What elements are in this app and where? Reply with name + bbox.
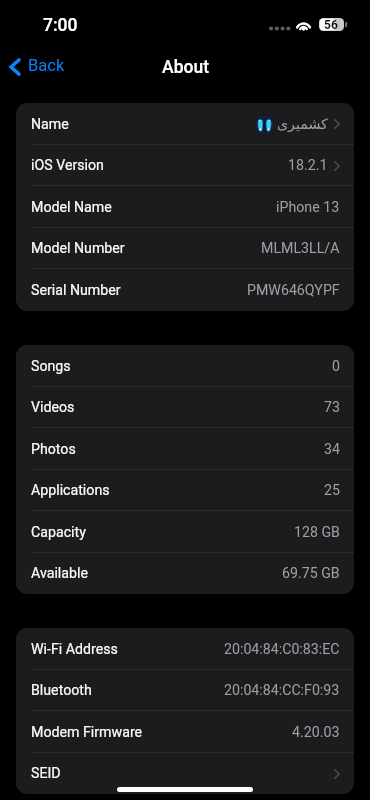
staticText: SEID [31, 765, 61, 782]
staticText: 4.20.03 [292, 724, 340, 741]
staticText: Videos [31, 399, 75, 416]
staticText: iOS Version [31, 157, 104, 174]
button[interactable]: Model Number [16, 228, 354, 269]
staticText: Applications [31, 482, 110, 499]
button[interactable]: Songs [16, 345, 354, 387]
staticText: 7:00 [43, 15, 78, 36]
staticText: 25 [324, 482, 340, 499]
button[interactable]: SEID [16, 753, 354, 794]
staticText: 34 [324, 441, 340, 458]
staticText: Available [31, 565, 88, 582]
staticText: Serial Number [31, 282, 121, 299]
staticText: Wi-Fi Address [31, 641, 118, 658]
staticText: 128 GB [294, 524, 340, 541]
button[interactable]: Back [0, 52, 75, 81]
button[interactable]: Serial Number [16, 269, 354, 311]
button[interactable]: Wi-Fi Address [16, 628, 354, 670]
staticText: iPhone 13 [276, 199, 340, 216]
button[interactable]: Model Name [16, 186, 354, 228]
staticText: MLML3LL/A [261, 240, 340, 257]
staticText: 56 [324, 18, 338, 32]
button[interactable]: iOS Version [16, 145, 354, 186]
staticText: Photos [31, 441, 76, 458]
button[interactable]: Applications [16, 470, 354, 511]
staticText: 20:04:84:CC:F0:93 [224, 682, 340, 699]
button[interactable]: Photos [16, 428, 354, 470]
button[interactable]: Available [16, 553, 354, 594]
button[interactable]: Modem Firmware [16, 711, 354, 753]
staticText: Name [31, 116, 69, 133]
button[interactable]: Bluetooth [16, 670, 354, 711]
staticText: Model Name [31, 199, 112, 216]
staticText: Bluetooth [31, 682, 92, 699]
staticText: PMW646QYPF [247, 282, 340, 299]
staticText: Model Number [31, 240, 125, 257]
button[interactable]: Videos [16, 387, 354, 428]
staticText: 73 [324, 399, 340, 416]
button[interactable]: Name [16, 103, 354, 145]
staticText: 69.75 GB [282, 565, 340, 582]
staticText: 0 [332, 358, 340, 375]
staticText: 20:04:84:C0:83:EC [224, 641, 340, 658]
button[interactable]: Capacity [16, 511, 354, 553]
staticText: Back [28, 56, 65, 75]
staticText: About [162, 57, 210, 78]
staticText: 18.2.1 [288, 157, 328, 174]
staticText: Modem Firmware [31, 724, 143, 741]
staticText: Capacity [31, 524, 86, 541]
staticText: کشمیری [277, 116, 328, 133]
staticText: Songs [31, 358, 71, 375]
